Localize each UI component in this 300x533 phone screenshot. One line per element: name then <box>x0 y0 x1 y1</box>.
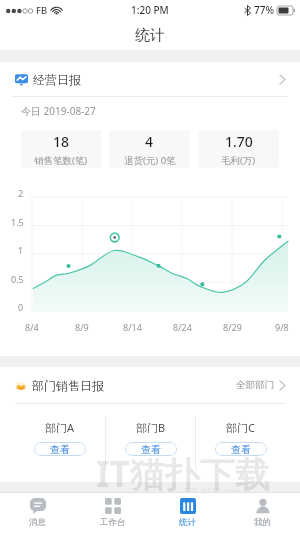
staticText: IT猫扑下载 <box>96 450 270 498</box>
button[interactable]: 消息 <box>0 493 75 533</box>
staticText: 8/4 <box>25 321 39 333</box>
button[interactable]: 查看 <box>215 442 267 456</box>
staticText: 部门C <box>226 420 255 435</box>
staticText: GPS.it120.com <box>183 486 241 498</box>
staticText: 全部部门 <box>236 379 274 391</box>
button[interactable]: 1.70 <box>198 130 279 168</box>
staticText: 2 <box>18 187 24 199</box>
staticText: 0 <box>18 301 24 313</box>
button[interactable]: 查看 <box>34 442 86 456</box>
staticText: 查看 <box>50 443 70 456</box>
staticText: 统计 <box>135 26 165 45</box>
button[interactable]: 4 <box>109 130 190 168</box>
staticText: 部门B <box>136 420 166 435</box>
button[interactable]: 经营日报 <box>0 62 300 96</box>
staticText: 8/24 <box>173 321 192 333</box>
button[interactable]: 部门销售日报 <box>0 367 300 403</box>
staticText: 查看 <box>231 443 251 456</box>
staticText: 消息 <box>29 517 46 528</box>
button[interactable]: 统计 <box>150 493 225 533</box>
staticText: 1:20 PM <box>131 3 169 17</box>
staticText: 9/8 <box>275 321 289 333</box>
staticText: 统计 <box>179 517 196 528</box>
staticText: 8/9 <box>75 321 89 333</box>
staticText: 1 <box>18 244 24 256</box>
staticText: 4 <box>145 132 154 151</box>
staticText: 0.5 <box>11 273 24 285</box>
button[interactable]: 查看 <box>125 442 177 456</box>
staticText: 8/14 <box>123 321 142 333</box>
staticText: 部门A <box>45 420 75 435</box>
staticText: 我的 <box>254 517 271 528</box>
staticText: FB <box>36 4 48 17</box>
staticText: 今日 2019-08-27 <box>21 104 96 118</box>
staticText: 8/29 <box>223 321 242 333</box>
staticText: 经营日报 <box>33 72 81 87</box>
staticText: 部门销售日报 <box>32 378 104 393</box>
staticText: 毛利(万) <box>221 154 256 167</box>
staticText: 工作台 <box>100 517 126 528</box>
button[interactable]: 工作台 <box>75 493 150 533</box>
staticText: 退货(元) 0笔 <box>124 154 176 167</box>
staticText: 销售笔数(笔) <box>34 154 88 167</box>
staticText: 查看 <box>141 443 161 456</box>
staticText: 18 <box>53 132 70 151</box>
button[interactable]: 18 <box>21 130 101 168</box>
button[interactable]: 我的 <box>225 493 300 533</box>
staticText: 1.70 <box>225 132 253 151</box>
staticText: 1.5 <box>11 216 24 228</box>
staticText: 77% <box>254 3 274 17</box>
